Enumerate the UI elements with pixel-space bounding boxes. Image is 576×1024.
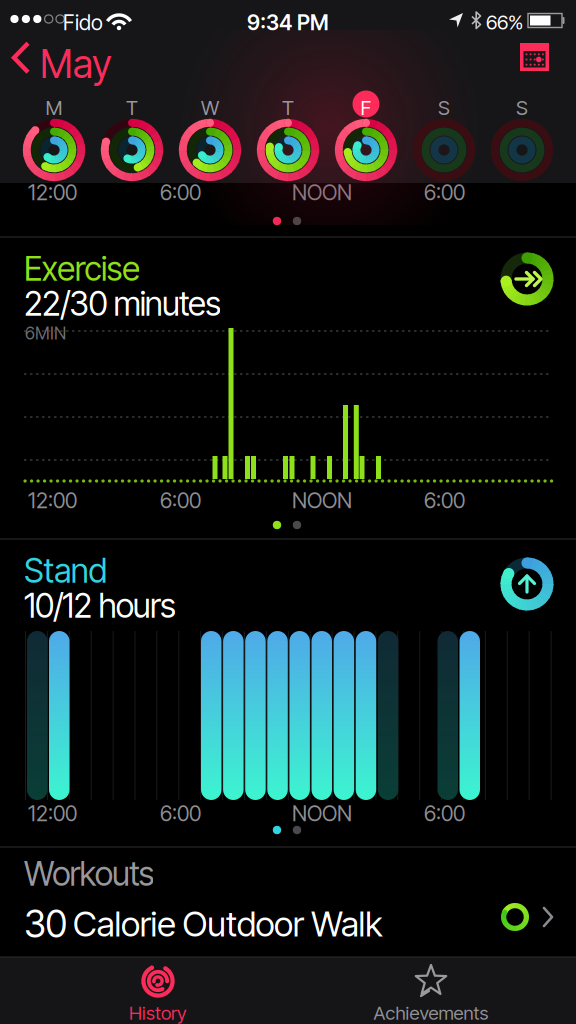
button[interactable]: 30 <box>0 894 576 956</box>
button[interactable]: T <box>249 88 327 184</box>
staticText: Fido <box>63 10 103 35</box>
staticText: Achievements <box>373 1002 488 1024</box>
staticText: Exercise <box>24 249 140 288</box>
staticText: 6:00 <box>424 488 465 513</box>
staticText: 12:00 <box>28 488 77 513</box>
staticText: 9:34 PM <box>247 10 329 35</box>
button[interactable]: S <box>483 88 561 184</box>
staticText: NOON <box>292 801 352 826</box>
staticText: S <box>516 96 528 120</box>
button[interactable]: W <box>171 88 249 184</box>
staticText: S <box>438 96 450 120</box>
staticText: 6:00 <box>160 801 201 826</box>
button[interactable]: May <box>9 43 119 83</box>
staticText: Stand <box>24 551 107 590</box>
button[interactable]: History <box>58 958 258 1024</box>
button[interactable]: Achievements <box>321 958 541 1024</box>
staticText: F <box>360 96 371 120</box>
staticText: 10/12 hours <box>24 586 176 625</box>
staticText: M <box>45 96 62 120</box>
staticText: 66% <box>486 10 523 34</box>
button[interactable]: F <box>327 88 405 184</box>
button[interactable]: T <box>93 88 171 184</box>
staticText: NOON <box>292 488 352 513</box>
button[interactable]: S <box>405 88 483 184</box>
staticText: Workouts <box>24 854 154 893</box>
button[interactable]: M <box>15 88 93 184</box>
staticText: Calorie Outdoor Walk <box>73 903 382 944</box>
staticText: T <box>126 96 138 120</box>
staticText: 12:00 <box>28 180 77 205</box>
staticText: 12:00 <box>28 801 77 826</box>
staticText: History <box>129 1002 187 1024</box>
staticText: 6:00 <box>160 488 201 513</box>
button[interactable] <box>520 43 549 71</box>
staticText: 6:00 <box>160 180 201 205</box>
staticText: 6MIN <box>25 323 66 343</box>
staticText: 30 <box>24 902 67 946</box>
staticText: 22/30 minutes <box>24 284 221 323</box>
staticText: NOON <box>292 180 352 205</box>
staticText: May <box>40 41 112 87</box>
staticText: 6:00 <box>424 801 465 826</box>
staticText: T <box>282 96 294 120</box>
staticText: W <box>201 96 219 120</box>
staticText: 6:00 <box>424 180 465 205</box>
